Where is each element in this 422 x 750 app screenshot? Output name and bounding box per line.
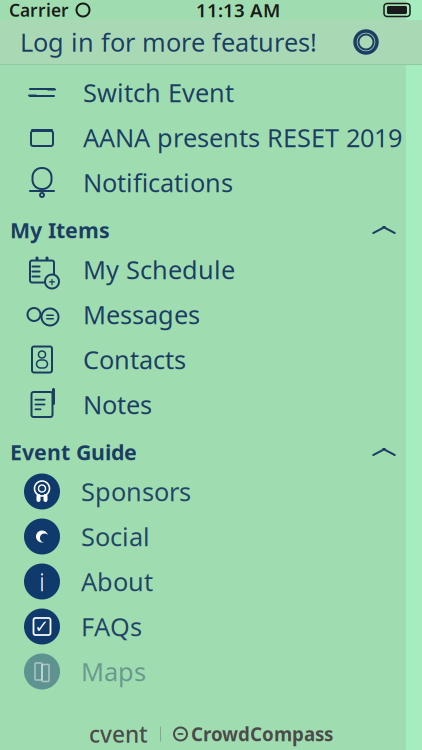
staticText: ✓ (34, 617, 49, 636)
button[interactable]: My Items (0, 213, 422, 247)
staticText: Sponsors (81, 475, 191, 508)
staticText: CrowdCompass (191, 722, 333, 746)
staticText: Maps (81, 655, 146, 688)
button[interactable]: + (0, 247, 422, 292)
button[interactable]: AANA presents RESET 2019 (0, 115, 422, 160)
button[interactable]: i (0, 559, 422, 604)
staticText: i (39, 565, 45, 598)
staticText: My Items (10, 216, 110, 244)
staticText: Notifications (83, 166, 233, 199)
staticText: 11:13 AM (196, 0, 280, 22)
staticText: Contacts (83, 343, 186, 376)
button[interactable]: Contacts (0, 337, 422, 382)
staticText: Messages (83, 298, 200, 331)
button[interactable]: Social (0, 514, 422, 559)
staticText: Log in for more features! (20, 25, 317, 59)
button[interactable]: ✓ (0, 604, 422, 649)
button[interactable]: Sponsors (0, 469, 422, 514)
staticText: My Schedule (83, 253, 235, 286)
staticText: FAQs (81, 610, 142, 643)
button[interactable]: Maps (0, 649, 422, 694)
staticText: cvent (89, 719, 148, 749)
button[interactable]: Log in for more features! (0, 20, 422, 64)
staticText: + (48, 273, 55, 289)
staticText: Notes (83, 388, 152, 421)
button[interactable]: Notifications (0, 160, 422, 205)
staticText: AANA presents RESET 2019 (83, 121, 402, 154)
button[interactable]: Event Guide (0, 435, 422, 469)
staticText: About (81, 565, 153, 598)
staticText: Social (81, 520, 150, 553)
button[interactable]: Notes (0, 382, 422, 427)
button[interactable]: Switch Event (0, 70, 422, 115)
staticText: Event Guide (10, 438, 137, 466)
button[interactable]: Messages (0, 292, 422, 337)
staticText: Switch Event (83, 76, 234, 109)
staticText: Carrier (9, 0, 69, 21)
